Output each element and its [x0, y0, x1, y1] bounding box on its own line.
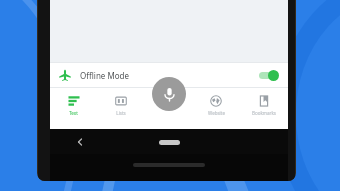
button[interactable]: Back — [72, 134, 88, 150]
button[interactable]: Bookmarks — [240, 88, 288, 129]
staticText: Text — [69, 110, 78, 116]
staticText: Lists — [116, 110, 126, 116]
button[interactable]: Text — [50, 88, 97, 129]
button[interactable]: Website — [192, 88, 240, 129]
staticText: Offline Mode — [80, 70, 129, 81]
button[interactable]: Home — [151, 134, 187, 150]
button[interactable]: Offline Mode — [50, 63, 288, 87]
staticText: Website — [208, 110, 225, 116]
staticText: Bookmarks — [252, 110, 276, 116]
button[interactable]: Voice search — [152, 77, 186, 111]
button[interactable]: Lists — [97, 88, 144, 129]
